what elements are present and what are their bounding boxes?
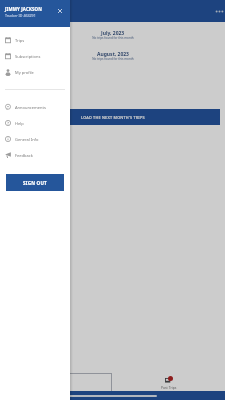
button[interactable]: My profile: [0, 64, 70, 80]
button[interactable]: Upcoming Trips: [0, 369, 112, 391]
button[interactable]: Feedback: [0, 147, 70, 163]
button[interactable]: More options: [213, 5, 225, 17]
staticText: LOAD THE NEXT MONTH'S TRIPS: [81, 115, 145, 120]
button[interactable]: Close navigation drawer: [54, 5, 66, 17]
staticText: Feedback: [15, 153, 33, 158]
button[interactable]: Past Trips: [112, 369, 225, 391]
staticText: August, 2023: [97, 51, 129, 58]
staticText: Subscriptions: [15, 54, 41, 59]
staticText: JIMMY JACKSON: [5, 6, 42, 12]
button[interactable]: General Info: [0, 131, 70, 147]
staticText: No trips found for this month: [92, 57, 134, 61]
button[interactable]: LOAD THE NEXT MONTH'S TRIPS: [5, 109, 220, 125]
staticText: Trips: [15, 38, 25, 43]
staticText: General Info: [15, 137, 39, 142]
button[interactable]: Subscriptions: [0, 48, 70, 64]
staticText: No trips found for this month: [92, 36, 134, 40]
staticText: SIGN OUT: [23, 180, 47, 186]
button[interactable]: Help: [0, 115, 70, 131]
staticText: Help: [15, 121, 24, 126]
staticText: Announcements: [15, 105, 46, 110]
staticText: July, 2023: [101, 30, 125, 37]
button[interactable]: SIGN OUT: [6, 174, 64, 191]
button[interactable]: Trips: [0, 32, 70, 48]
staticText: Trucker ID 463291: [5, 13, 36, 18]
staticText: My profile: [15, 70, 34, 75]
staticText: Past Trips: [161, 385, 177, 390]
button[interactable]: Announcements: [0, 99, 70, 115]
